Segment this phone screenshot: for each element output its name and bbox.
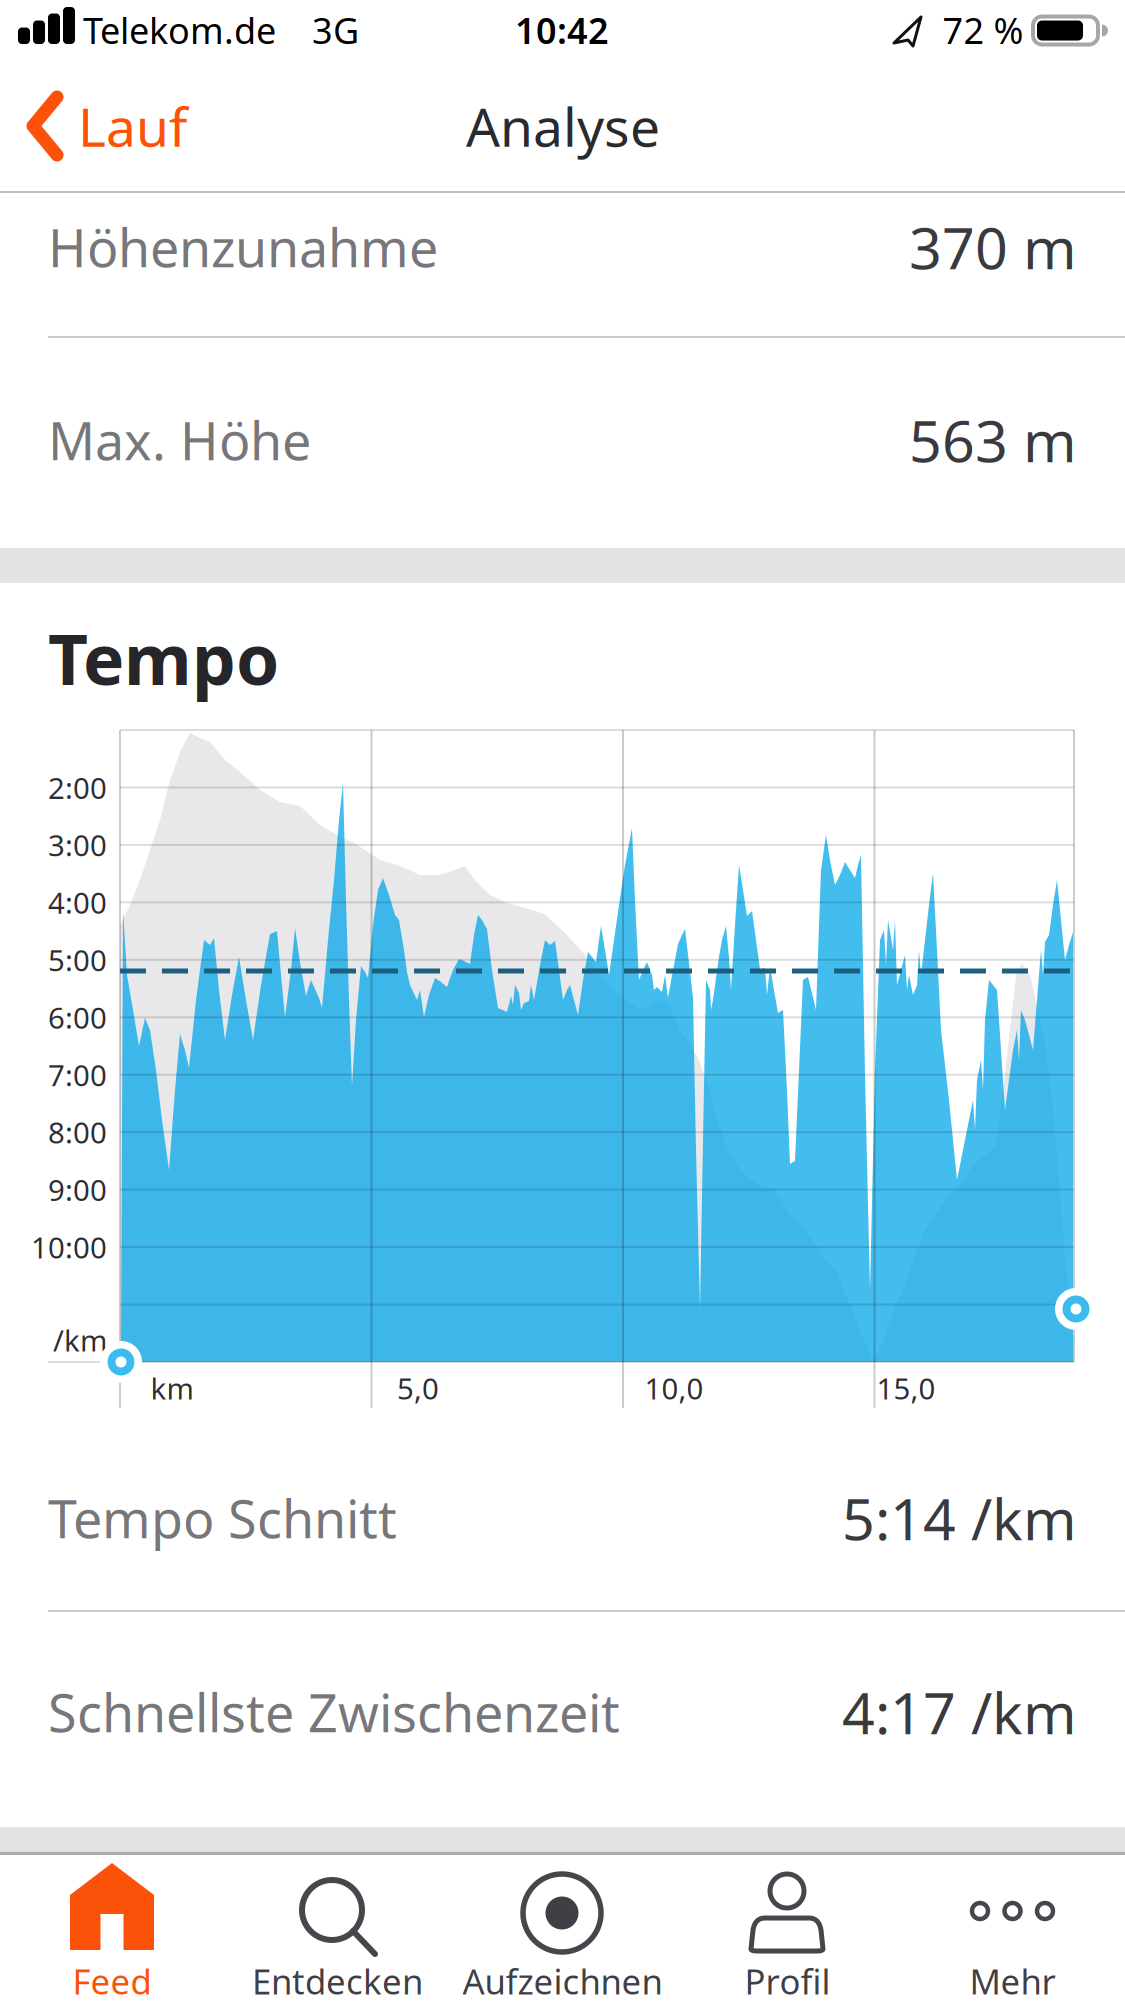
- staticText: Lauf: [78, 91, 187, 161]
- staticText: 3G: [312, 6, 359, 54]
- staticText: Schnellste Zwischenzeit: [48, 1677, 620, 1747]
- button[interactable]: Profil: [675, 1855, 900, 2001]
- staticText: Tempo Schnitt: [48, 1483, 397, 1553]
- staticText: Feed: [72, 1958, 151, 2001]
- staticText: 15,0: [876, 1368, 935, 1407]
- button[interactable]: Lauf: [0, 66, 230, 186]
- staticText: 4:17 /km: [842, 1674, 1077, 1750]
- staticText: Max. Höhe: [48, 405, 311, 475]
- staticText: 6:00: [48, 998, 107, 1037]
- button[interactable]: Entdecken: [225, 1855, 450, 2001]
- button[interactable]: Mehr: [900, 1855, 1125, 2001]
- staticText: 5:00: [48, 940, 107, 979]
- staticText: Höhenzunahme: [48, 212, 438, 282]
- staticText: 2:00: [48, 768, 107, 807]
- staticText: Entdecken: [252, 1958, 423, 2001]
- staticText: 9:00: [48, 1170, 107, 1209]
- staticText: 563 m: [909, 402, 1077, 478]
- staticText: 10,0: [644, 1368, 703, 1407]
- staticText: 10:42: [515, 6, 609, 54]
- staticText: Aufzeichnen: [462, 1958, 662, 2001]
- staticText: 8:00: [48, 1113, 107, 1152]
- staticText: 10:00: [31, 1228, 107, 1267]
- staticText: Analyse: [466, 91, 660, 161]
- button[interactable]: Feed: [0, 1855, 225, 2001]
- staticText: 370 m: [909, 209, 1077, 285]
- staticText: 5:14 /km: [842, 1480, 1077, 1556]
- staticText: Telekom.de: [83, 6, 276, 54]
- staticText: Profil: [744, 1958, 830, 2001]
- staticText: 4:00: [48, 883, 107, 922]
- staticText: Tempo: [48, 612, 279, 704]
- staticText: 5,0: [397, 1368, 439, 1407]
- staticText: Mehr: [969, 1958, 1055, 2001]
- staticText: /km: [53, 1320, 107, 1359]
- staticText: 7:00: [48, 1055, 107, 1094]
- button[interactable]: Aufzeichnen: [450, 1855, 675, 2001]
- staticText: 72 %: [942, 6, 1023, 54]
- staticText: 3:00: [48, 825, 107, 864]
- staticText: km: [150, 1368, 193, 1407]
